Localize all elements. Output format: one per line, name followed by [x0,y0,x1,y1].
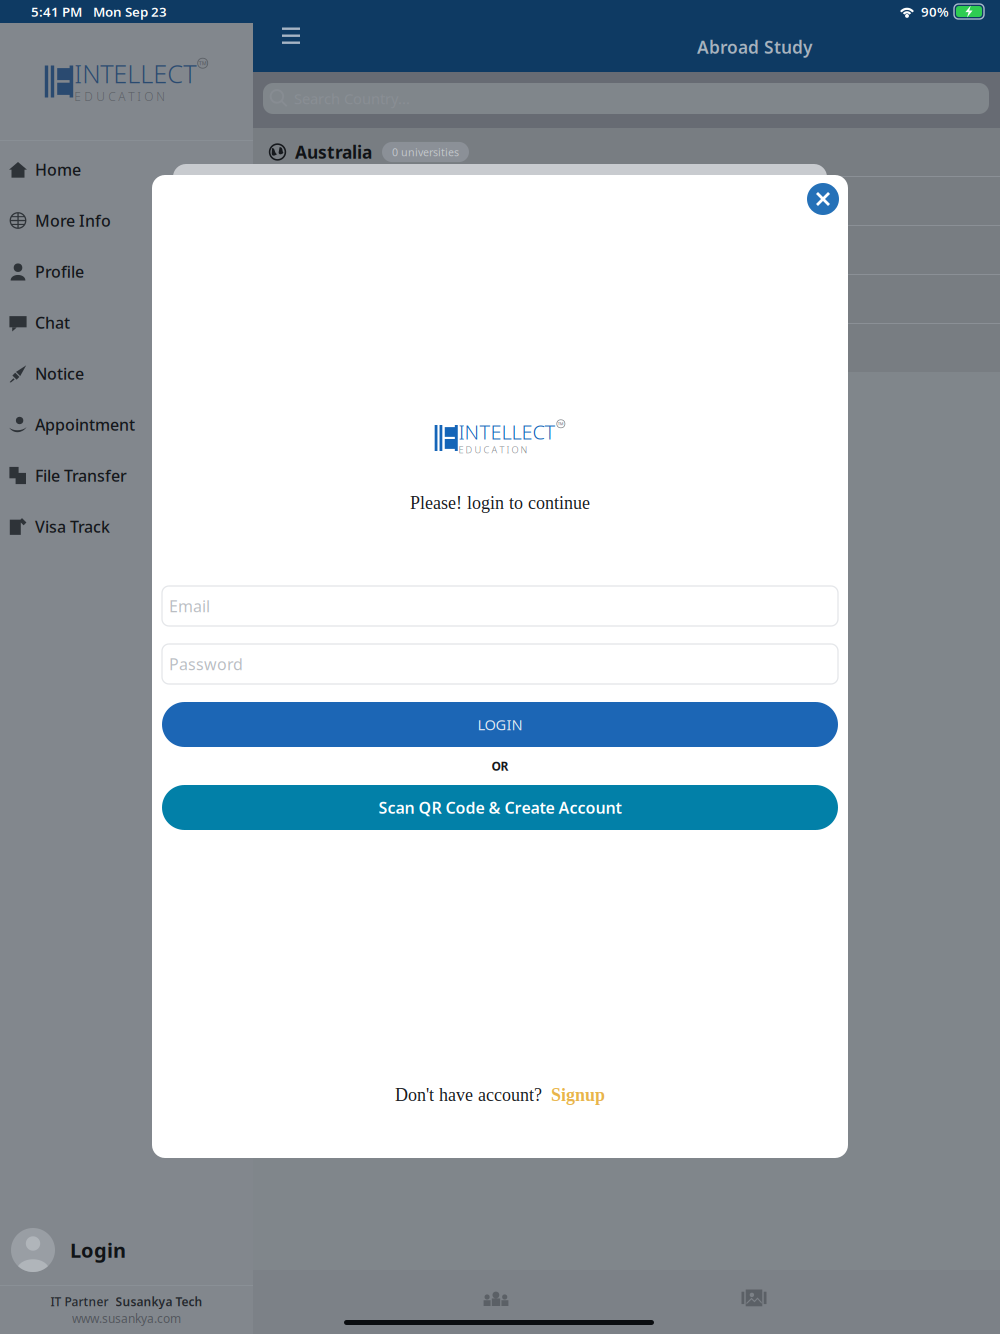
button[interactable]: Students [456,1283,536,1315]
staticText: Susankya Tech [115,1294,202,1309]
staticText: Chat [35,312,70,333]
button[interactable]: Profile [0,246,253,297]
button[interactable]: File Transfer [0,450,253,501]
button[interactable]: Appointment [0,399,253,450]
staticText: Visa Track [35,516,110,537]
button[interactable]: Gallery [714,1282,794,1314]
staticText: IT Partner [50,1294,108,1309]
staticText: INTELLECT [459,418,556,445]
staticText: Notice [35,363,84,384]
staticText: TM [558,421,564,426]
button[interactable]: Close [801,177,845,221]
button[interactable]: Home [0,144,253,195]
button[interactable]: More Info [0,195,253,246]
button[interactable]: Login [0,1215,253,1285]
staticText: Australia [295,140,372,163]
staticText: Appointment [35,414,135,435]
staticText: Signup [551,1085,605,1105]
staticText: Profile [35,261,84,282]
button[interactable] [253,177,1000,225]
staticText: 0 universities [392,145,459,159]
button[interactable]: Don't have account? [152,1075,848,1115]
staticText: www.susankya.com [72,1310,181,1326]
staticText: LOGIN [477,715,522,734]
button[interactable]: LOGIN [162,702,838,747]
staticText: Login [70,1237,126,1263]
button[interactable]: Scan QR Code & Create Account [162,785,838,830]
staticText: Home [35,159,81,180]
staticText: E D U C A T I O N [74,88,165,104]
staticText: INTELLECT [74,57,196,90]
staticText: Password [169,653,243,675]
button[interactable]: Australia [253,128,1000,176]
staticText: OR [491,758,508,774]
staticText: 90% [921,3,949,20]
button[interactable]: Notice [0,348,253,399]
staticText: More Info [35,210,111,231]
staticText: Please! login to continue [410,493,590,513]
staticText: TM [199,60,207,67]
staticText: File Transfer [35,465,127,486]
staticText: Email [169,595,210,617]
button[interactable] [253,226,1000,274]
button[interactable]: Menu [269,14,313,58]
button[interactable] [253,324,1000,372]
button[interactable] [253,275,1000,323]
staticText: Don't have account? [395,1085,542,1105]
staticText: 5:41 PM [31,3,82,20]
button[interactable]: Visa Track [0,501,253,552]
staticText: E D U C A T I O N [459,443,528,456]
staticText: Abroad Study [697,35,812,58]
staticText: Mon Sep 23 [93,3,167,20]
button[interactable]: Chat [0,297,253,348]
staticText: Scan QR Code & Create Account [378,797,621,818]
